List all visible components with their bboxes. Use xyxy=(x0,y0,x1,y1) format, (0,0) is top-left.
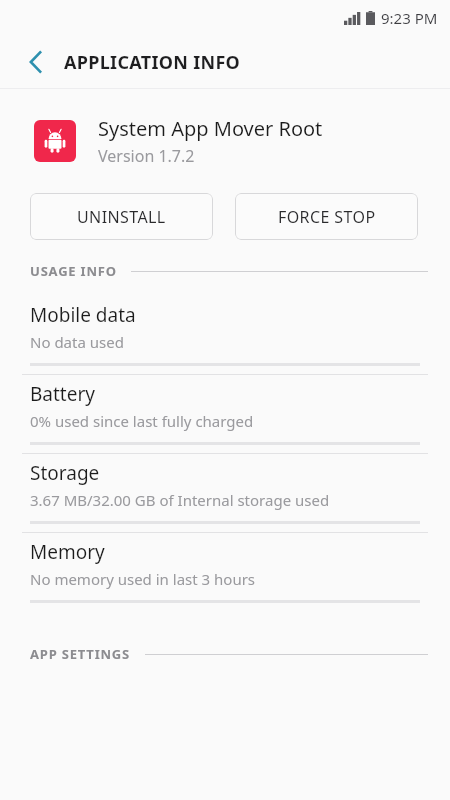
staticText: Memory xyxy=(30,539,105,565)
button[interactable]: UNINSTALL xyxy=(30,193,213,240)
button[interactable]: Mobile data xyxy=(0,296,450,374)
staticText: APP SETTINGS xyxy=(30,645,131,663)
staticText: Storage xyxy=(30,460,100,486)
button[interactable]: Back xyxy=(18,45,52,79)
staticText: 9:23 PM xyxy=(381,8,438,28)
staticText: No memory used in last 3 hours xyxy=(30,569,256,589)
button[interactable]: Storage xyxy=(0,454,450,532)
staticText: APPLICATION INFO xyxy=(64,50,241,75)
staticText: 0% used since last fully charged xyxy=(30,411,254,431)
staticText: Battery xyxy=(30,381,95,407)
button[interactable]: Memory xyxy=(0,533,450,611)
staticText: System App Mover Root xyxy=(98,115,323,142)
button[interactable]: FORCE STOP xyxy=(235,193,418,240)
button[interactable]: Battery xyxy=(0,375,450,453)
staticText: USAGE INFO xyxy=(30,262,117,280)
staticText: UNINSTALL xyxy=(77,206,166,228)
staticText: Version 1.7.2 xyxy=(98,145,195,167)
staticText: Mobile data xyxy=(30,302,136,328)
staticText: No data used xyxy=(30,332,124,352)
staticText: 3.67 MB/32.00 GB of Internal storage use… xyxy=(30,490,330,510)
staticText: FORCE STOP xyxy=(278,206,376,228)
